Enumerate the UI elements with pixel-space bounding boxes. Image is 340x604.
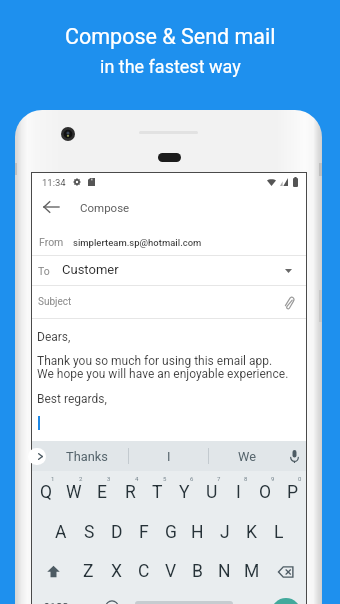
button[interactable]: 4 [116, 471, 144, 512]
button[interactable]: Show more recipients [278, 261, 298, 281]
button[interactable]: B [184, 552, 211, 591]
staticText: E [97, 482, 107, 503]
staticText: G [165, 522, 177, 543]
button[interactable]: M [238, 552, 265, 591]
staticText: A [55, 522, 67, 543]
button[interactable]: We [209, 441, 285, 471]
button[interactable]: Voice input [281, 441, 308, 471]
button[interactable]: 1 [32, 471, 60, 512]
button[interactable]: X [102, 552, 130, 591]
staticText: K [246, 522, 257, 543]
staticText: T [152, 482, 163, 503]
staticText: simplerteam.sp@hotmail.com [73, 237, 202, 248]
staticText: W [66, 482, 82, 503]
button[interactable]: 5 [144, 471, 171, 512]
staticText: 2 [79, 475, 83, 482]
staticText: 1 [51, 475, 55, 482]
staticText: C [138, 561, 150, 582]
button[interactable]: ?123 [32, 591, 98, 604]
staticText: M [244, 561, 260, 582]
button[interactable]: 8 [225, 471, 252, 512]
button[interactable]: C [130, 552, 157, 591]
staticText: Q [40, 482, 53, 503]
staticText: Y [179, 482, 190, 503]
staticText: O [259, 482, 272, 503]
button[interactable]: Back [37, 193, 65, 221]
staticText: We hope you will have an enjoyable exper… [37, 367, 289, 381]
staticText: From [39, 236, 64, 248]
staticText: ?123 [44, 600, 69, 604]
button[interactable]: L [265, 512, 292, 552]
staticText: L [274, 522, 284, 543]
staticText: Customer [62, 262, 119, 277]
button[interactable]: Shift [32, 552, 74, 591]
button[interactable]: Emoji [98, 591, 125, 604]
button[interactable]: Send [271, 598, 301, 604]
staticText: F [139, 522, 149, 543]
staticText: Subject [38, 296, 72, 308]
staticText: Thank you so much for using this email a… [37, 354, 273, 368]
staticText: 7 [217, 475, 221, 482]
button[interactable]: K [238, 512, 265, 552]
button[interactable]: S [75, 512, 103, 552]
button[interactable]: Z [74, 552, 102, 591]
staticText: U [206, 482, 218, 503]
staticText: We [238, 449, 256, 464]
button[interactable]: 0 [279, 471, 306, 512]
staticText: 3 [107, 475, 111, 482]
button[interactable]: N [211, 552, 238, 591]
staticText: I [167, 449, 171, 464]
button[interactable]: J [211, 512, 238, 552]
button[interactable]: 6 [171, 471, 198, 512]
button[interactable]: 2 [60, 471, 88, 512]
button[interactable]: Backspace [265, 552, 306, 591]
staticText: in the fastest way [100, 56, 241, 77]
button[interactable]: 9 [252, 471, 279, 512]
button[interactable]: V [157, 552, 184, 591]
staticText: 0 [298, 475, 302, 482]
staticText: V [165, 561, 177, 582]
staticText: P [287, 482, 299, 503]
staticText: J [220, 522, 230, 543]
button[interactable]: Thanks [46, 441, 128, 471]
button[interactable]: H [184, 512, 211, 552]
staticText: X [111, 561, 122, 582]
button[interactable]: A [47, 512, 75, 552]
staticText: Compose & Send mail [65, 24, 276, 49]
button[interactable]: 3 [88, 471, 116, 512]
button[interactable]: I [129, 441, 208, 471]
staticText: 8 [244, 475, 248, 482]
staticText: N [218, 561, 231, 582]
staticText: R [125, 482, 136, 503]
staticText: Thanks [66, 449, 108, 464]
button[interactable]: G [157, 512, 184, 552]
staticText: D [111, 522, 123, 543]
staticText: B [192, 561, 203, 582]
staticText: H [191, 522, 204, 543]
button[interactable]: Attach file [279, 293, 299, 313]
staticText: Compose [80, 201, 130, 214]
staticText: 6 [190, 475, 194, 482]
staticText: 9 [271, 475, 275, 482]
staticText: Z [83, 561, 94, 582]
staticText: 5 [163, 475, 167, 482]
staticText: 4 [135, 475, 139, 482]
button[interactable]: More suggestions [28, 448, 46, 465]
staticText: I [236, 482, 241, 503]
button[interactable]: D [103, 512, 130, 552]
button[interactable]: F [130, 512, 157, 552]
staticText: 11:34 [42, 177, 66, 188]
staticText: Dears, [37, 330, 71, 344]
staticText: Best regards, [37, 392, 107, 406]
staticText: S [84, 522, 95, 543]
staticText: To [38, 265, 50, 277]
button[interactable]: 7 [198, 471, 225, 512]
